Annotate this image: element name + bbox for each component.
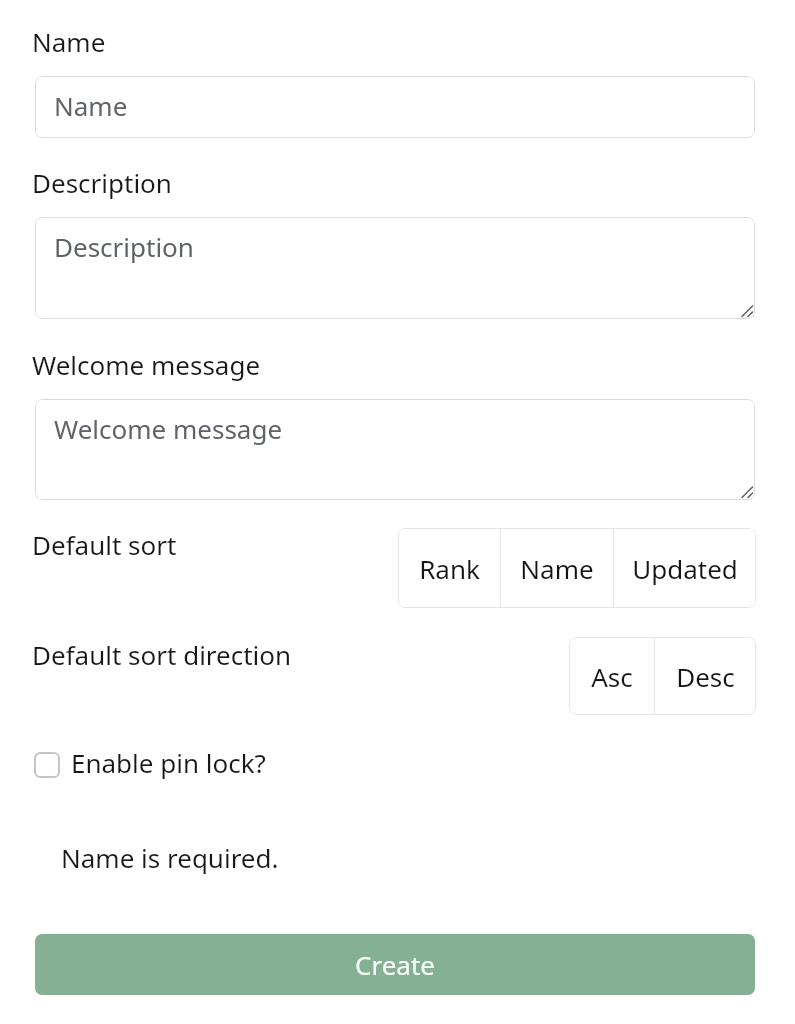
button[interactable]: Description <box>35 217 755 319</box>
staticText: Enable pin lock? <box>71 745 266 780</box>
other: Resize <box>741 305 755 319</box>
staticText: Welcome message <box>54 411 283 446</box>
button[interactable]: Enable pin lock checkbox <box>34 745 266 780</box>
staticText: Updated <box>632 551 738 586</box>
staticText: Description <box>32 165 172 200</box>
staticText: Name <box>520 551 594 586</box>
other: Enable pin lock checkbox <box>34 752 60 778</box>
staticText: Asc <box>591 659 633 694</box>
staticText: Default sort <box>32 527 177 562</box>
staticText: Name <box>54 88 128 123</box>
staticText: Create <box>355 947 435 982</box>
button[interactable]: Name <box>501 528 613 608</box>
button[interactable]: Rank <box>398 528 500 608</box>
staticText: Name <box>32 24 106 59</box>
button[interactable]: Updated <box>614 528 756 608</box>
staticText: Welcome message <box>32 347 261 382</box>
button[interactable]: Name <box>35 76 755 138</box>
button[interactable]: Create <box>35 934 755 995</box>
other: Resize <box>741 486 755 500</box>
button[interactable]: Asc <box>569 637 654 715</box>
staticText: Default sort direction <box>32 637 292 672</box>
staticText: Desc <box>676 659 735 694</box>
staticText: Description <box>54 229 194 264</box>
staticText: Rank <box>419 551 480 586</box>
staticText: Name is required. <box>61 840 279 875</box>
button[interactable]: Desc <box>655 637 756 715</box>
button[interactable]: Welcome message <box>35 399 755 500</box>
